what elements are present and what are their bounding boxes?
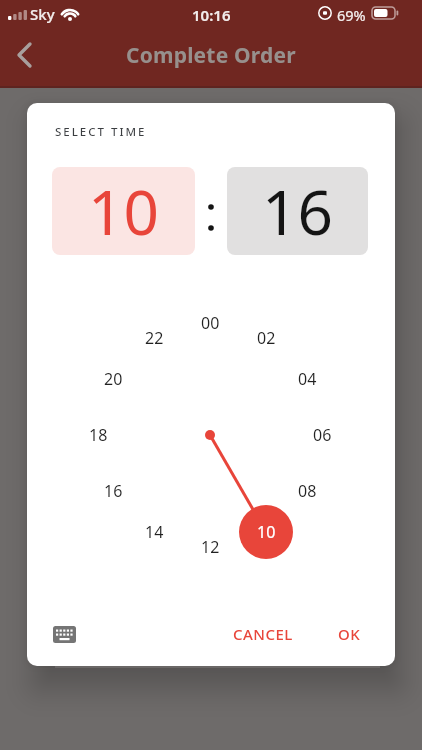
- staticText: 14: [145, 521, 164, 543]
- staticText: OK: [338, 624, 361, 644]
- staticText: 04: [298, 368, 317, 390]
- staticText: 02: [257, 327, 276, 349]
- staticText: 10: [88, 169, 159, 253]
- staticText: 10:16: [192, 5, 231, 25]
- staticText: 22: [145, 327, 164, 349]
- staticText: 00: [201, 312, 220, 334]
- staticText: Complete Order: [126, 41, 296, 70]
- staticText: SELECT TIME: [55, 124, 147, 140]
- staticText: 69%: [337, 5, 366, 25]
- staticText: 06: [313, 424, 332, 446]
- staticText: Sky: [30, 4, 55, 24]
- staticText: 10: [257, 521, 276, 543]
- staticText: 08: [298, 480, 317, 502]
- staticText: 18: [89, 424, 108, 446]
- staticText: 16: [104, 480, 123, 502]
- staticText: 12: [201, 536, 220, 558]
- staticText: 20: [104, 368, 123, 390]
- staticText: 16: [262, 169, 333, 253]
- staticText: CANCEL: [233, 624, 293, 644]
